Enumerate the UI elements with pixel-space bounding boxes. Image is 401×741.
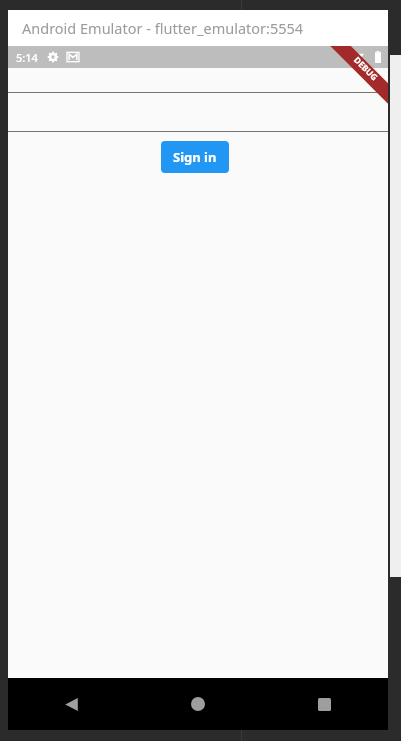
button[interactable] — [8, 93, 388, 132]
button[interactable]: Home — [134, 678, 261, 730]
staticText: 5:14 — [16, 50, 38, 65]
button[interactable]: Sign in — [161, 141, 229, 173]
button[interactable]: Recent apps — [261, 678, 388, 730]
button[interactable]: Back — [8, 678, 134, 730]
staticText: Sign in — [173, 148, 217, 166]
staticText: Android Emulator - flutter_emulator:5554 — [22, 18, 304, 38]
button[interactable] — [8, 68, 388, 93]
staticText: DEBUG — [351, 54, 381, 84]
